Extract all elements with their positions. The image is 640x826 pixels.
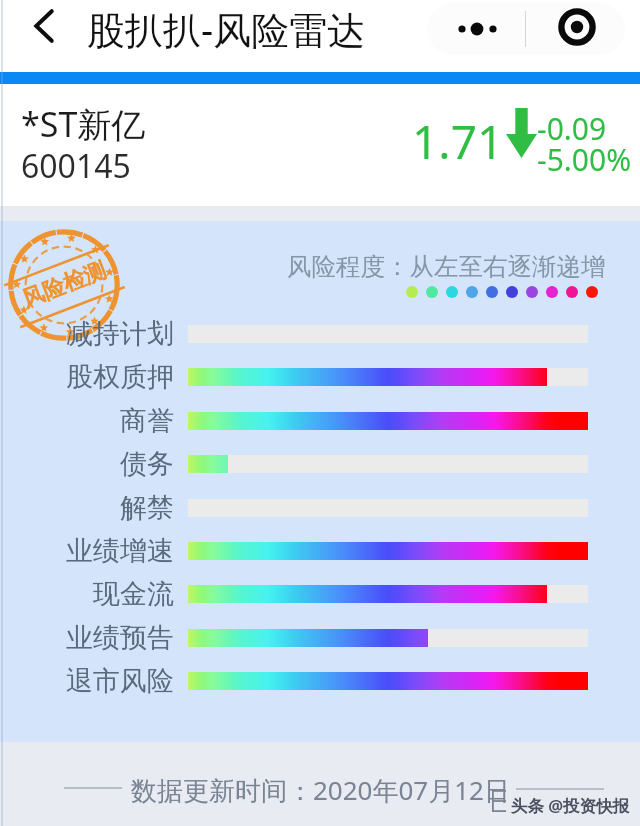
button[interactable]: Close mini program [526,3,625,55]
staticText: -0.09 [537,108,607,149]
button[interactable]: Back [21,3,66,48]
staticText: 风险检测 [18,256,110,314]
staticText: 1.71 [412,110,504,173]
staticText: 600145 [21,144,131,188]
button[interactable]: 商誉 [0,398,174,444]
staticText: 业绩增速 [66,534,174,568]
button[interactable]: 债务 [0,441,174,487]
staticText: 头条 @投资快报 [511,794,630,817]
button[interactable]: 解禁 [0,485,174,531]
staticText: 现金流 [93,577,174,611]
button[interactable]: 股权质押 [0,354,174,400]
staticText: 商誉 [120,404,174,438]
staticText: 债务 [120,447,174,481]
button[interactable]: 退市风险 [0,658,174,704]
button[interactable]: 业绩增速 [0,528,174,574]
staticText: 解禁 [120,491,174,525]
button[interactable]: 减持计划 [0,311,174,357]
staticText: 股权质押 [66,360,174,394]
staticText: 数据更新时间：2020年07月12日 [131,772,510,808]
button[interactable]: More options [427,3,526,55]
staticText: 退市风险 [66,664,174,698]
button[interactable]: 现金流 [0,571,174,617]
staticText: 减持计划 [66,317,174,351]
button[interactable]: 业绩预告 [0,615,174,661]
staticText: 风险程度：从左至右逐渐递增 [287,251,606,282]
staticText: *ST新亿 [21,101,146,147]
staticText: -5.00% [537,139,632,180]
staticText: 业绩预告 [66,621,174,655]
staticText: 股扒扒-风险雷达 [87,3,366,55]
